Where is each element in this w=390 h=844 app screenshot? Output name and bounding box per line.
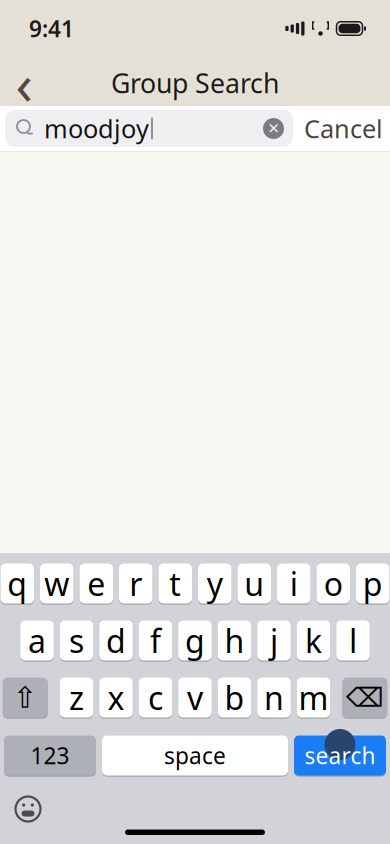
staticText: s [69,619,84,662]
staticText: e [87,562,105,605]
staticText: ⇧ [13,681,38,714]
staticText: Cancel [304,112,383,145]
button[interactable]: q [0,562,34,605]
button[interactable]: x [99,676,133,719]
button[interactable]: d [99,619,133,662]
button[interactable]: c [139,676,172,719]
button[interactable]: moodjoy [5,110,293,147]
staticText: x [107,676,124,719]
staticText: t [169,562,181,605]
staticText: g [185,619,205,662]
button[interactable]: a [20,619,54,662]
button[interactable]: n [257,676,291,719]
staticText: f [150,619,161,662]
button[interactable]: Cancel [304,104,383,153]
staticText: j [270,619,278,662]
button[interactable]: y [198,562,231,605]
button[interactable]: f [139,619,172,662]
staticText: k [305,619,322,662]
button[interactable]: p [356,562,389,605]
staticText: d [106,619,126,662]
button[interactable]: Shift [3,676,48,719]
staticText: 123 [30,740,69,770]
staticText: Group Search [111,65,279,101]
staticText: w [44,562,69,605]
staticText: a [28,619,46,662]
staticText: m [298,676,328,719]
button[interactable]: w [40,562,73,605]
staticText: r [129,562,142,605]
button[interactable]: r [119,562,152,605]
staticText: moodjoy [44,112,149,145]
button[interactable]: t [158,562,192,605]
staticText: search [304,740,375,770]
button[interactable]: o [316,562,350,605]
staticText: o [324,562,343,605]
button[interactable]: g [178,619,212,662]
staticText: ⌫ [346,682,384,713]
staticText: u [244,562,264,605]
button[interactable]: m [297,676,330,719]
staticText: l [349,619,357,662]
button[interactable]: Space [102,734,288,777]
button[interactable]: search [294,734,386,777]
staticText: ‹ [15,46,32,120]
staticText: q [7,562,27,605]
staticText: c [148,676,163,719]
button[interactable]: z [60,676,93,719]
staticText: space [164,740,226,770]
button[interactable]: Delete [342,676,387,719]
button[interactable]: v [178,676,212,719]
button[interactable]: Back [2,61,46,105]
staticText: n [264,676,284,719]
staticText: h [224,619,244,662]
staticText: z [69,676,84,719]
button[interactable]: k [297,619,330,662]
button[interactable]: s [60,619,93,662]
button[interactable]: b [218,676,251,719]
button[interactable]: l [336,619,370,662]
staticText: i [290,562,298,605]
staticText: y [207,562,223,605]
button[interactable]: i [277,562,310,605]
button[interactable]: Numbers [4,734,96,777]
button[interactable]: h [218,619,251,662]
button[interactable]: Emoji keyboard [6,789,50,829]
staticText: v [187,676,203,719]
staticText: 9:41 [29,13,74,43]
button[interactable]: j [257,619,291,662]
staticText: p [363,562,383,605]
staticText: ✕ [267,120,279,137]
button[interactable]: e [79,562,113,605]
staticText: b [224,676,244,719]
button[interactable]: u [237,562,271,605]
